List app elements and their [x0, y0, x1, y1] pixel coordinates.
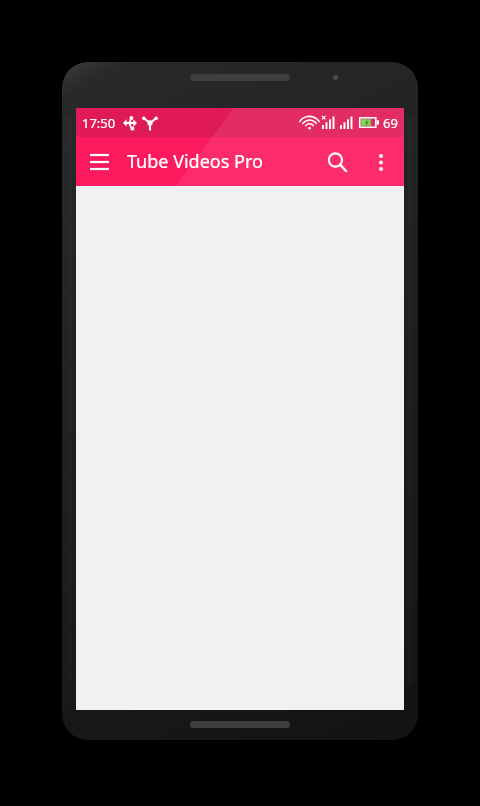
button[interactable]: More options	[360, 141, 402, 183]
staticText: 17:50	[82, 114, 116, 132]
staticText: Tube Videos Pro	[127, 149, 314, 174]
button[interactable]: Search	[314, 139, 360, 185]
staticText: 69	[383, 114, 398, 132]
button[interactable]: Open navigation drawer	[76, 139, 122, 185]
